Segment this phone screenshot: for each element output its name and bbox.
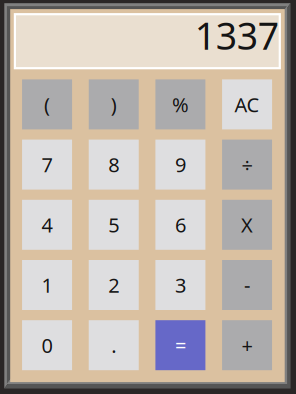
- staticText: 2: [108, 272, 119, 298]
- staticText: 4: [42, 211, 53, 238]
- button[interactable]: Multiply: [222, 200, 272, 250]
- button[interactable]: Percent: [155, 79, 205, 129]
- staticText: .: [111, 332, 116, 358]
- staticText: +: [242, 332, 253, 358]
- staticText: 9: [175, 151, 186, 178]
- staticText: 6: [175, 211, 186, 238]
- staticText: AC: [235, 91, 260, 118]
- button[interactable]: Decimal point: [89, 320, 139, 370]
- button[interactable]: Minus: [222, 260, 272, 310]
- button[interactable]: 8: [89, 140, 139, 190]
- button[interactable]: Equals: [155, 320, 205, 370]
- staticText: 3: [175, 272, 186, 298]
- button[interactable]: All clear: [222, 79, 272, 129]
- staticText: (: [44, 91, 50, 118]
- staticText: ): [111, 91, 117, 118]
- button[interactable]: Close parenthesis: [89, 79, 139, 129]
- staticText: 0: [42, 332, 53, 358]
- button[interactable]: 0: [22, 320, 72, 370]
- staticText: 7: [42, 151, 53, 178]
- staticText: =: [175, 332, 186, 358]
- button[interactable]: Open parenthesis: [22, 79, 72, 129]
- button[interactable]: 9: [155, 140, 205, 190]
- staticText: 5: [108, 211, 119, 238]
- button[interactable]: 5: [89, 200, 139, 250]
- staticText: 1: [42, 272, 53, 298]
- button[interactable]: 3: [155, 260, 205, 310]
- button[interactable]: Divide: [222, 140, 272, 190]
- button[interactable]: 4: [22, 200, 72, 250]
- button[interactable]: 2: [89, 260, 139, 310]
- staticText: -: [244, 272, 250, 298]
- button[interactable]: 6: [155, 200, 205, 250]
- button[interactable]: 7: [22, 140, 72, 190]
- button[interactable]: 1: [22, 260, 72, 310]
- staticText: %: [172, 91, 189, 118]
- staticText: 8: [108, 151, 119, 178]
- staticText: ÷: [242, 151, 253, 178]
- button[interactable]: Plus: [222, 320, 272, 370]
- staticText: 1337: [195, 10, 279, 60]
- staticText: X: [241, 211, 253, 238]
